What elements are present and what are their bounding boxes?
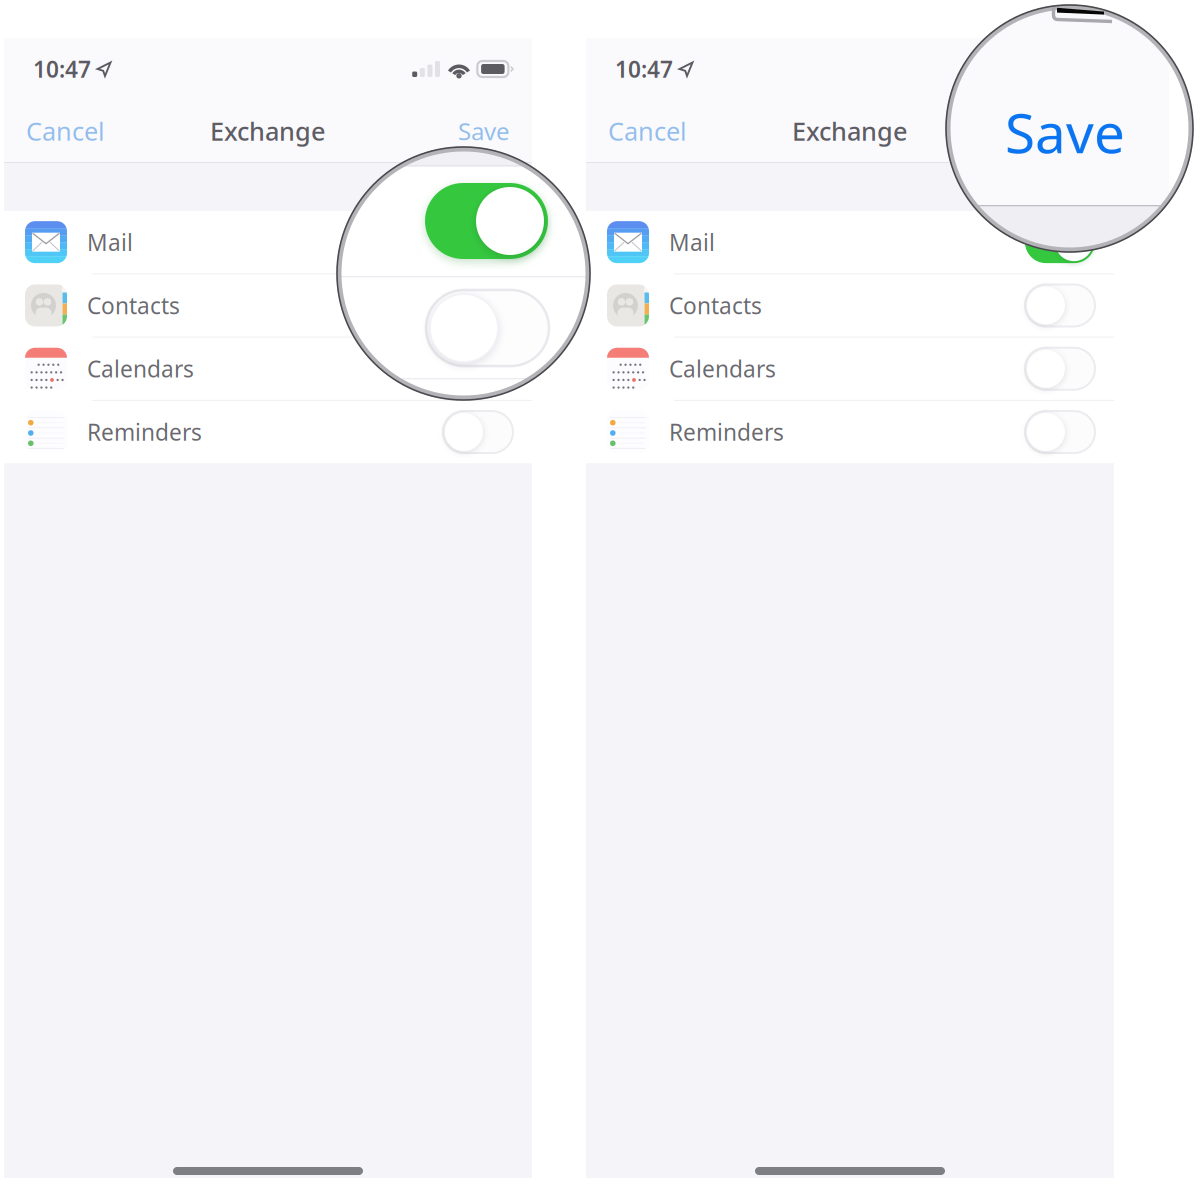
staticText: Reminders <box>87 417 202 447</box>
button[interactable]: Save <box>1024 101 1114 161</box>
button[interactable]: Mail <box>4 211 532 273</box>
button[interactable]: Contacts <box>4 274 532 337</box>
staticText: Save <box>458 115 510 147</box>
button[interactable]: Mail <box>586 211 1114 273</box>
staticText: Save <box>1040 115 1092 147</box>
staticText: Calendars <box>669 354 776 384</box>
button[interactable]: Calendars <box>4 338 532 400</box>
staticText: Contacts <box>87 290 180 320</box>
staticText: Save <box>1005 96 1125 168</box>
staticText: Mail <box>87 227 133 257</box>
button[interactable]: Cancel <box>4 100 121 162</box>
staticText: 10:47 <box>615 54 673 84</box>
button[interactable]: Contacts <box>586 274 1114 337</box>
button[interactable]: Calendars <box>586 338 1114 400</box>
staticText: Cancel <box>26 114 105 148</box>
staticText: Calendars <box>87 354 194 384</box>
button[interactable]: Reminders <box>586 401 1114 463</box>
staticText: 10:47 <box>33 54 91 84</box>
button[interactable]: Reminders <box>4 401 532 463</box>
staticText: Exchange <box>792 114 908 148</box>
button[interactable]: Cancel <box>586 100 703 162</box>
staticText: Mail <box>669 227 715 257</box>
button[interactable]: Save <box>442 101 532 161</box>
staticText: Cancel <box>608 114 687 148</box>
staticText: Reminders <box>669 417 784 447</box>
staticText: Contacts <box>669 290 762 320</box>
staticText: Exchange <box>210 114 326 148</box>
